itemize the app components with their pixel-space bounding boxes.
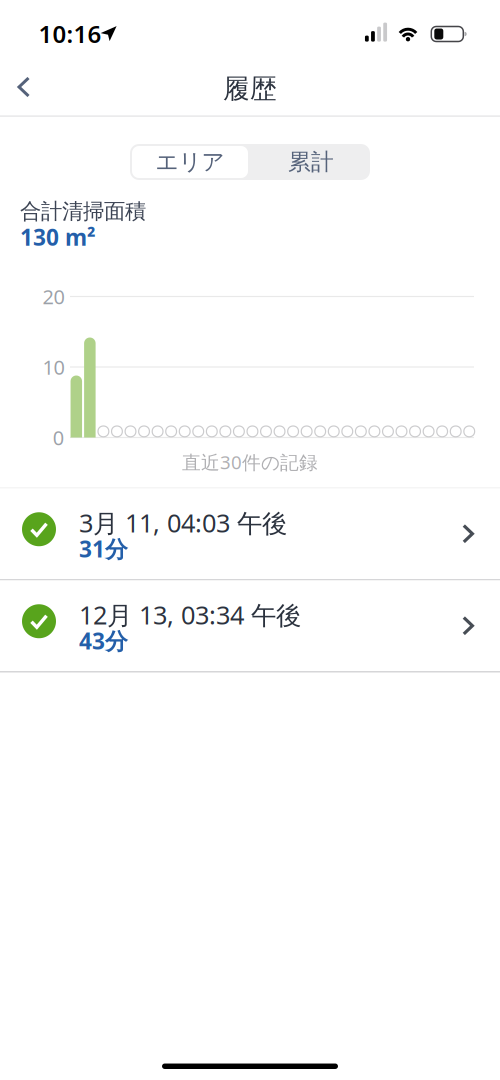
staticText: 0 bbox=[53, 424, 64, 451]
staticText: 31分 bbox=[79, 534, 128, 564]
staticText: 履歴 bbox=[223, 72, 277, 105]
staticText: 12月 13, 03:34 午後 bbox=[79, 598, 301, 631]
staticText: 累計 bbox=[288, 148, 334, 176]
staticText: 10:16 bbox=[38, 18, 101, 50]
staticText: 直近30件の記録 bbox=[182, 450, 318, 474]
staticText: エリア bbox=[155, 148, 224, 176]
button[interactable]: 12月 13, 03:34 午後 bbox=[0, 580, 500, 671]
button[interactable]: エリア bbox=[130, 144, 250, 180]
button[interactable]: Back bbox=[5, 64, 45, 109]
staticText: 10 bbox=[42, 354, 64, 380]
staticText: 3月 11, 04:03 午後 bbox=[79, 506, 287, 539]
staticText: 43分 bbox=[79, 626, 128, 656]
staticText: 130 m² bbox=[20, 222, 96, 252]
button[interactable]: 累計 bbox=[251, 144, 371, 180]
staticText: 20 bbox=[42, 283, 64, 310]
button[interactable]: 3月 11, 04:03 午後 bbox=[0, 488, 500, 579]
staticText: 合計清掃面積 bbox=[20, 198, 146, 225]
